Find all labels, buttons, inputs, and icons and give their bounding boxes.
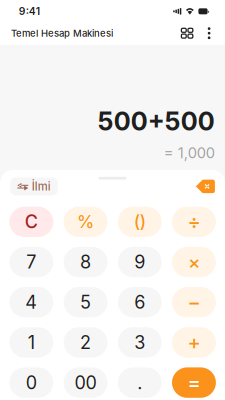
staticText: Temel Hesap Makinesi <box>11 27 113 39</box>
staticText: İlmi <box>32 180 51 193</box>
button[interactable]: % <box>64 207 107 237</box>
staticText: 7 <box>26 251 36 273</box>
button[interactable]: = <box>172 367 216 398</box>
button[interactable]: 3 <box>118 327 162 358</box>
staticText: 0 <box>26 372 37 393</box>
button[interactable]: . <box>118 367 162 398</box>
staticText: . <box>137 372 142 393</box>
staticText: − <box>187 290 200 314</box>
button[interactable]: Delete <box>196 180 215 193</box>
button[interactable]: + <box>172 327 216 358</box>
button[interactable]: 2 <box>64 327 107 358</box>
staticText: 1 <box>28 331 35 353</box>
button[interactable]: 8 <box>64 247 107 277</box>
staticText: 2 <box>80 331 91 353</box>
button[interactable]: Grid layout <box>179 25 195 41</box>
staticText: 6 <box>134 291 145 313</box>
staticText: 500+500 <box>98 106 215 137</box>
staticText: 8 <box>80 251 91 273</box>
button[interactable]: More options <box>204 25 214 41</box>
button[interactable]: 4 <box>9 287 53 317</box>
button[interactable]: 0 <box>9 367 53 398</box>
button[interactable]: 9 <box>118 247 162 277</box>
staticText: × <box>188 251 200 273</box>
staticText: = 1,000 <box>164 144 215 162</box>
staticText: 9 <box>134 251 145 273</box>
staticText: 9:41 <box>19 5 40 18</box>
staticText: 00 <box>75 372 97 393</box>
button[interactable]: İlmi <box>10 177 58 195</box>
staticText: () <box>134 211 146 232</box>
staticText: 3 <box>134 331 145 353</box>
staticText: = <box>187 370 200 395</box>
staticText: 4 <box>25 291 37 313</box>
button[interactable]: 6 <box>118 287 162 317</box>
staticText: C <box>25 211 38 233</box>
button[interactable]: C <box>9 207 53 237</box>
button[interactable]: ÷ <box>172 207 216 237</box>
staticText: + <box>187 330 200 354</box>
button[interactable]: − <box>172 287 216 317</box>
button[interactable]: 00 <box>64 367 107 398</box>
staticText: % <box>77 211 94 232</box>
button[interactable]: × <box>172 247 216 277</box>
button[interactable]: () <box>118 207 162 237</box>
staticText: ÷ <box>187 210 200 234</box>
button[interactable]: 5 <box>64 287 107 317</box>
button[interactable]: 7 <box>9 247 53 277</box>
button[interactable]: 1 <box>9 327 53 358</box>
staticText: 5 <box>80 291 91 313</box>
